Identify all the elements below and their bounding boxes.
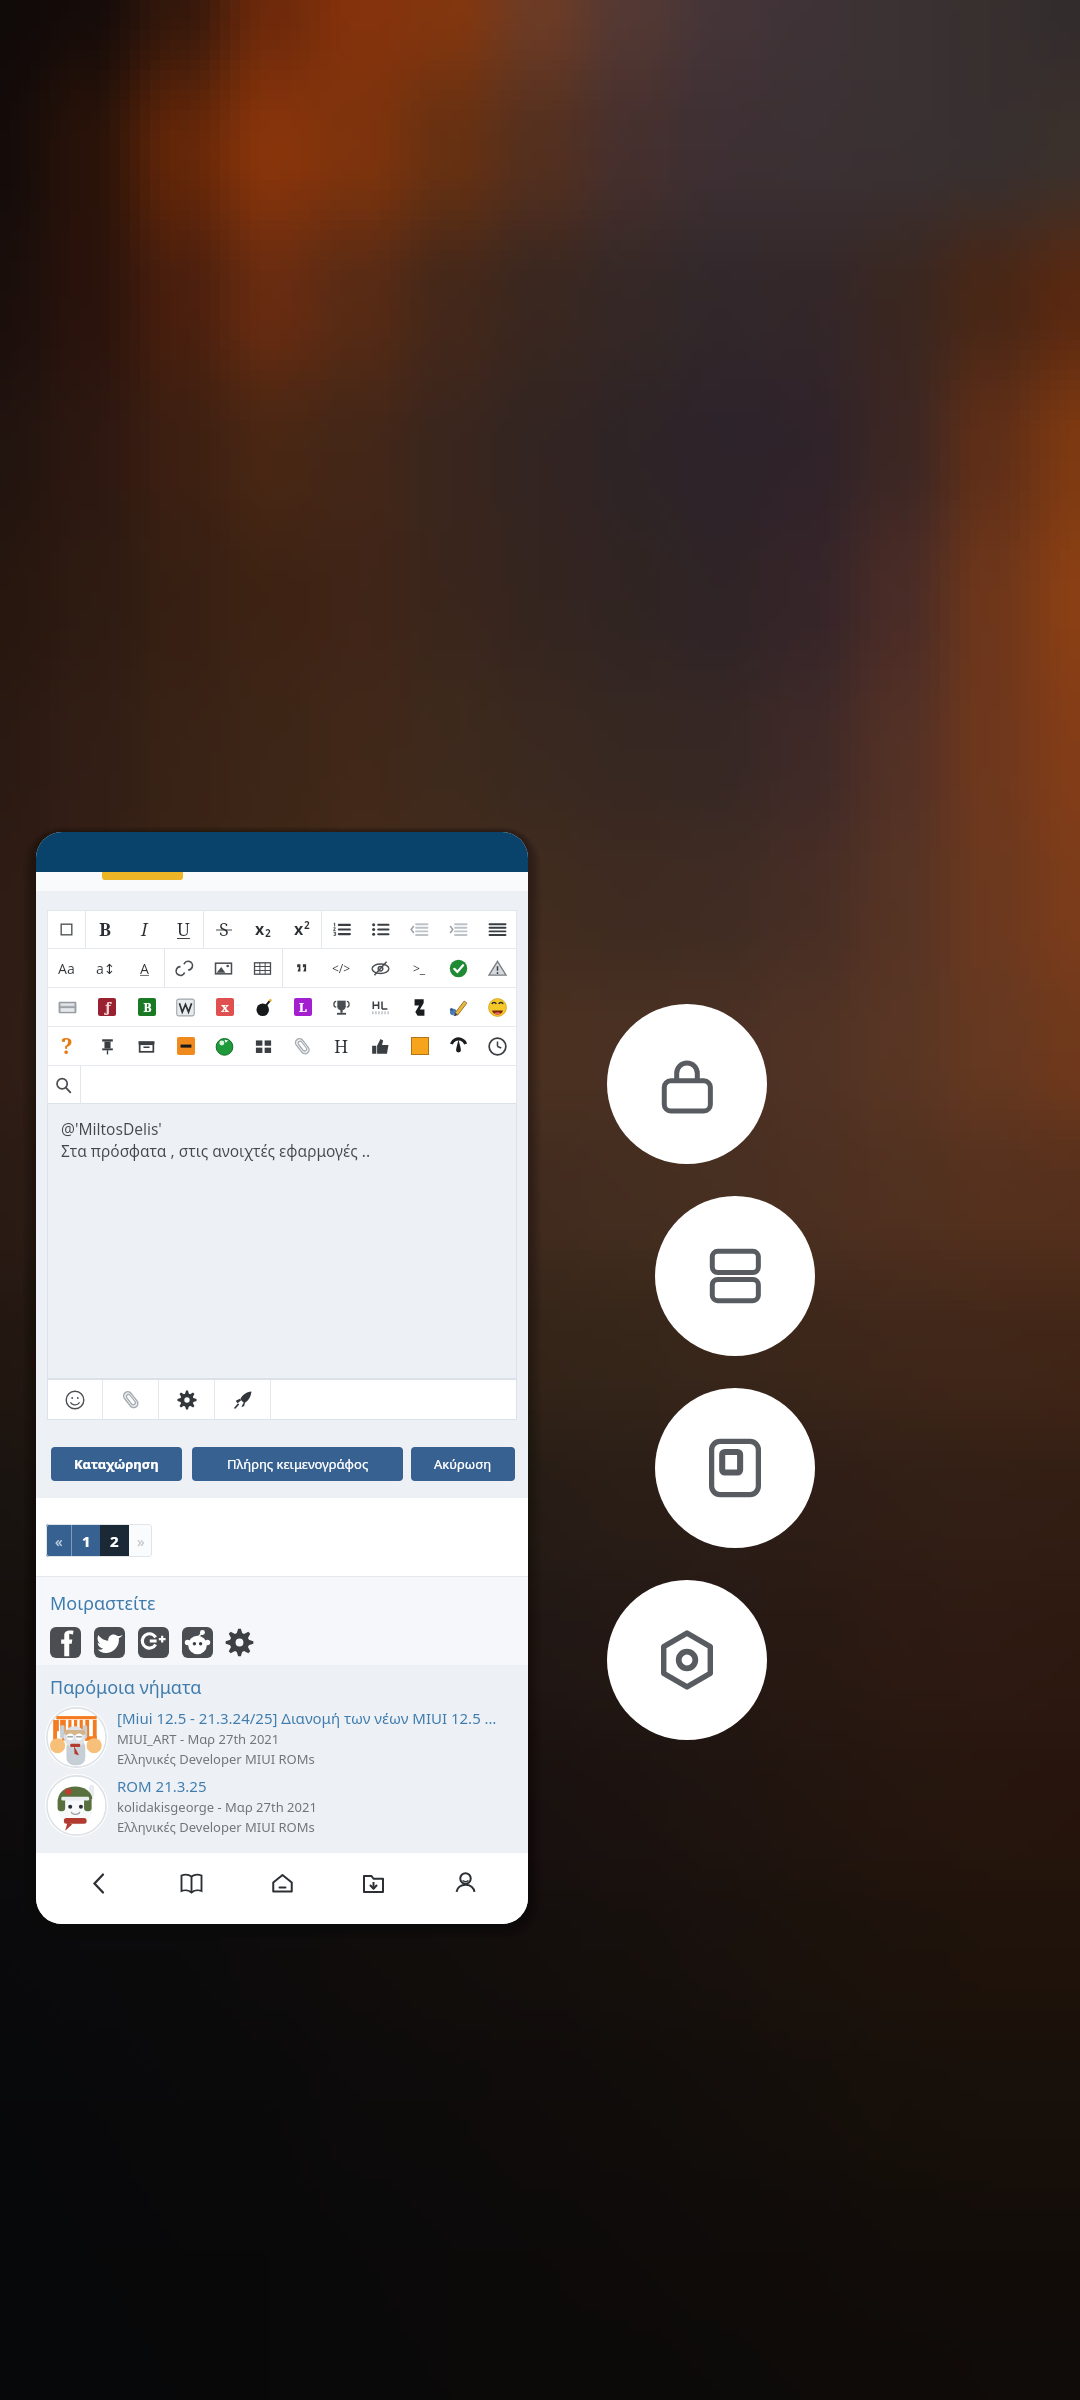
- staticText: MIUI_ART - Μαρ 27th 2021: [117, 1730, 280, 1748]
- button[interactable]: Spoiler bar: [166, 1027, 205, 1065]
- staticText: B: [143, 999, 152, 1015]
- staticText: 1: [82, 1531, 91, 1551]
- button[interactable]: [103, 1379, 158, 1420]
- button[interactable]: 1: [72, 1524, 100, 1557]
- button[interactable]: «: [46, 1524, 71, 1557]
- button[interactable]: Laughing smiley: [478, 988, 517, 1026]
- button[interactable]: Remove formatting: [47, 910, 85, 948]
- button[interactable]: [215, 1379, 270, 1420]
- button[interactable]: Picture in picture: [655, 1388, 815, 1548]
- button[interactable]: Highlight: [361, 988, 400, 1026]
- staticText: Καταχώρηση: [74, 1455, 159, 1473]
- button[interactable]: Drawing smiley: [439, 988, 478, 1026]
- button[interactable]: Link box: [283, 988, 322, 1026]
- button[interactable]: Rebel smiley: [439, 1027, 478, 1065]
- staticText: x: [221, 999, 229, 1015]
- button[interactable]: Remove box: [205, 988, 244, 1026]
- staticText: Στα πρόσφατα , στις ανοιχτές εφαρμογές .…: [61, 1140, 371, 1161]
- button[interactable]: Ακύρωση: [411, 1447, 515, 1481]
- staticText: Ελληνικές Developer MIUI ROMs: [117, 1750, 315, 1768]
- button[interactable]: Insert image: [204, 949, 243, 987]
- button[interactable]: Insert link: [165, 949, 204, 987]
- button[interactable]: Facebook: [50, 1627, 81, 1658]
- button[interactable]: Attachment: [283, 1027, 322, 1065]
- button[interactable]: Bulleted list: [361, 910, 400, 948]
- button[interactable]: Editor tool: [282, 910, 321, 948]
- button[interactable]: Editor tool: [204, 910, 243, 948]
- button[interactable]: Thumbs up: [361, 1027, 400, 1065]
- button[interactable]: Google Plus: [138, 1627, 169, 1658]
- button[interactable]: [Miui 12.5 - 21.3.24/25] Διανομή των νέω…: [45, 1705, 524, 1770]
- button[interactable]: ROM 21.3.25: [45, 1773, 524, 1838]
- button[interactable]: Quote: [283, 949, 322, 987]
- staticText: L: [299, 999, 307, 1015]
- button[interactable]: More share options: [224, 1627, 255, 1658]
- button[interactable]: Editor tool: [86, 910, 125, 948]
- button[interactable]: Media box: [47, 988, 87, 1026]
- staticText: «: [55, 1531, 63, 1551]
- staticText: 2: [265, 926, 271, 940]
- staticText: 2: [110, 1531, 119, 1551]
- button[interactable]: [159, 1379, 214, 1420]
- button[interactable]: Editor tool: [322, 949, 361, 987]
- button[interactable]: Πλήρης κειμενογράφος: [192, 1447, 403, 1481]
- button[interactable]: Numbered list: [322, 910, 361, 948]
- button[interactable]: Globe smiley: [205, 1027, 244, 1065]
- button[interactable]: Καταχώρηση: [51, 1447, 182, 1481]
- staticText: B: [99, 917, 112, 942]
- button[interactable]: Decrease indent: [400, 910, 439, 948]
- button[interactable]: Editor tool: [125, 910, 164, 948]
- button[interactable]: Spoiler: [361, 949, 400, 987]
- staticText: x: [255, 918, 265, 940]
- button[interactable]: Editor tool: [243, 910, 282, 948]
- button[interactable]: Increase indent: [439, 910, 478, 948]
- button[interactable]: Flash media: [87, 988, 127, 1026]
- button[interactable]: DeviantArt link: [400, 988, 439, 1026]
- button[interactable]: [47, 1379, 102, 1420]
- staticText: A: [140, 959, 149, 978]
- staticText: Μοιραστείτε: [50, 1591, 156, 1616]
- staticText: x: [294, 918, 304, 940]
- staticText: »: [137, 1531, 145, 1551]
- button[interactable]: Editor tool: [322, 1027, 361, 1065]
- button[interactable]: Editor tool: [47, 1027, 87, 1065]
- button[interactable]: Pin: [87, 1027, 127, 1065]
- staticText: ƒ: [104, 998, 111, 1016]
- staticText: @'MiltosDelis': [61, 1118, 162, 1139]
- staticText: Παρόμοια νήματα: [50, 1675, 202, 1700]
- button[interactable]: Trophy smiley: [322, 988, 361, 1026]
- button[interactable]: 2: [100, 1524, 129, 1557]
- button[interactable]: App info: [607, 1580, 767, 1740]
- button[interactable]: Split screen: [655, 1196, 815, 1356]
- button[interactable]: Profile: [437, 1855, 493, 1911]
- button[interactable]: Archive: [127, 1027, 166, 1065]
- staticText: U: [177, 917, 190, 942]
- button[interactable]: Bomb smiley: [244, 988, 283, 1026]
- button[interactable]: Text alignment: [478, 910, 517, 948]
- button[interactable]: Editor tool: [125, 949, 164, 987]
- button[interactable]: Wikipedia link: [166, 988, 205, 1026]
- staticText: Πλήρης κειμενογράφος: [227, 1455, 369, 1473]
- button[interactable]: Grid: [244, 1027, 283, 1065]
- button[interactable]: Editor tool: [47, 949, 86, 987]
- button[interactable]: Clock smiley: [478, 1027, 517, 1065]
- staticText: Ελληνικές Developer MIUI ROMs: [117, 1818, 315, 1836]
- button[interactable]: Mark as solved: [439, 949, 478, 987]
- button[interactable]: Twitter: [94, 1627, 125, 1658]
- staticText: S: [219, 917, 229, 942]
- button[interactable]: Reddit: [182, 1627, 213, 1658]
- button[interactable]: Editor tool: [164, 910, 203, 948]
- button[interactable]: Editor tool: [400, 949, 439, 987]
- button[interactable]: Editor tool: [400, 1027, 439, 1065]
- staticText: ROM 21.3.25: [117, 1776, 207, 1796]
- button[interactable]: Downloads: [345, 1855, 401, 1911]
- button[interactable]: Lock app: [607, 1004, 767, 1164]
- button[interactable]: Back: [71, 1855, 127, 1911]
- button[interactable]: Insert table: [243, 949, 282, 987]
- button[interactable]: Editor tool: [86, 949, 125, 987]
- button[interactable]: Home: [254, 1855, 310, 1911]
- button[interactable]: »: [129, 1524, 152, 1557]
- button[interactable]: Warning box: [478, 949, 517, 987]
- button[interactable]: Bold box: [127, 988, 166, 1026]
- button[interactable]: Forums: [163, 1855, 219, 1911]
